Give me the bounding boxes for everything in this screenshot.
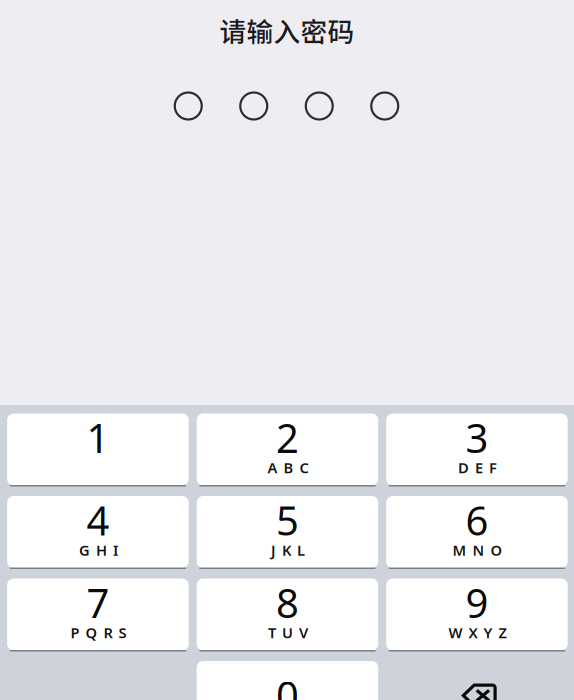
staticText: 7 — [86, 576, 109, 629]
staticText: 4 — [86, 493, 109, 546]
staticText: 6 — [465, 493, 488, 546]
staticText: G H I — [79, 540, 118, 560]
staticText: 3 — [465, 411, 488, 464]
button[interactable]: 8 — [197, 578, 378, 650]
button[interactable]: 7 — [7, 578, 189, 650]
staticText: 5 — [276, 493, 299, 546]
staticText: W X Y Z — [448, 623, 506, 642]
staticText: 8 — [276, 576, 299, 629]
staticText: T U V — [268, 623, 308, 642]
staticText: D E F — [458, 458, 497, 477]
button[interactable]: 9 — [386, 578, 568, 650]
button[interactable]: Delete — [386, 661, 568, 700]
staticText: 1 — [86, 411, 109, 464]
button[interactable]: 4 — [7, 496, 189, 568]
staticText: 9 — [465, 576, 488, 629]
button[interactable]: 3 — [386, 413, 568, 485]
button[interactable]: 0 — [197, 661, 378, 700]
button[interactable]: 1 — [7, 413, 189, 485]
staticText: 2 — [276, 411, 299, 464]
staticText: 请输入密码 — [219, 11, 354, 49]
button[interactable]: 2 — [197, 413, 378, 485]
staticText: J K L — [271, 540, 305, 560]
button[interactable]: 6 — [386, 496, 568, 568]
staticText: P Q R S — [70, 623, 126, 642]
staticText: M N O — [452, 540, 502, 560]
button[interactable]: 5 — [197, 496, 378, 568]
staticText: A B C — [267, 458, 308, 477]
staticText: 0 — [276, 668, 299, 700]
